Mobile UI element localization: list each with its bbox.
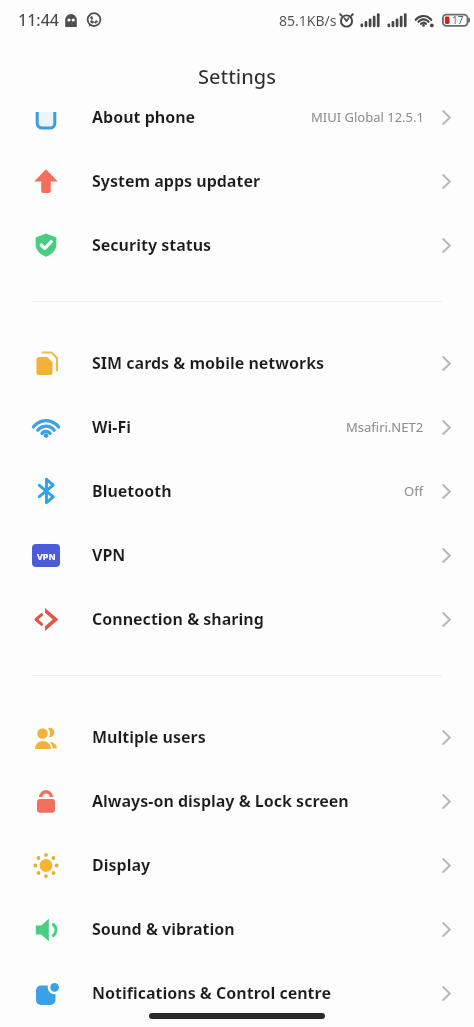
button[interactable]: VPN (0, 523, 474, 587)
staticText: Wi-Fi (92, 416, 131, 438)
staticText: 85.1KB/s (279, 11, 337, 30)
button[interactable]: Sound & vibration (0, 897, 474, 961)
staticText: VPN (92, 544, 126, 566)
staticText: SIM cards & mobile networks (92, 352, 325, 374)
button[interactable]: Bluetooth (0, 459, 474, 523)
staticText: 17 (452, 13, 464, 27)
button[interactable]: Display (0, 833, 474, 897)
button[interactable]: Always-on display & Lock screen (0, 769, 474, 833)
staticText: Settings (198, 63, 276, 90)
button[interactable]: Notifications & Control centre (0, 961, 474, 1025)
staticText: Notifications & Control centre (92, 982, 331, 1004)
button[interactable]: System apps updater (0, 149, 474, 213)
button[interactable]: About phone (0, 85, 474, 149)
button[interactable]: SIM cards & mobile networks (0, 331, 474, 395)
staticText: Sound & vibration (92, 918, 235, 940)
button[interactable]: Connection & sharing (0, 587, 474, 651)
staticText: Off (404, 482, 424, 500)
button[interactable]: Multiple users (0, 705, 474, 769)
button[interactable]: Security status (0, 213, 474, 277)
staticText: VPN (37, 550, 56, 562)
staticText: Always-on display & Lock screen (92, 790, 349, 812)
staticText: MIUI Global 12.5.1 (311, 108, 424, 126)
staticText: About phone (92, 106, 196, 128)
staticText: Display (92, 854, 151, 876)
staticText: Multiple users (92, 726, 206, 748)
staticText: 11:44 (18, 9, 59, 31)
staticText: Msafiri.NET2 (346, 418, 424, 436)
staticText: Connection & sharing (92, 608, 264, 630)
staticText: Bluetooth (92, 480, 172, 502)
button[interactable]: Wi-Fi (0, 395, 474, 459)
staticText: Security status (92, 234, 212, 256)
staticText: System apps updater (92, 170, 261, 192)
